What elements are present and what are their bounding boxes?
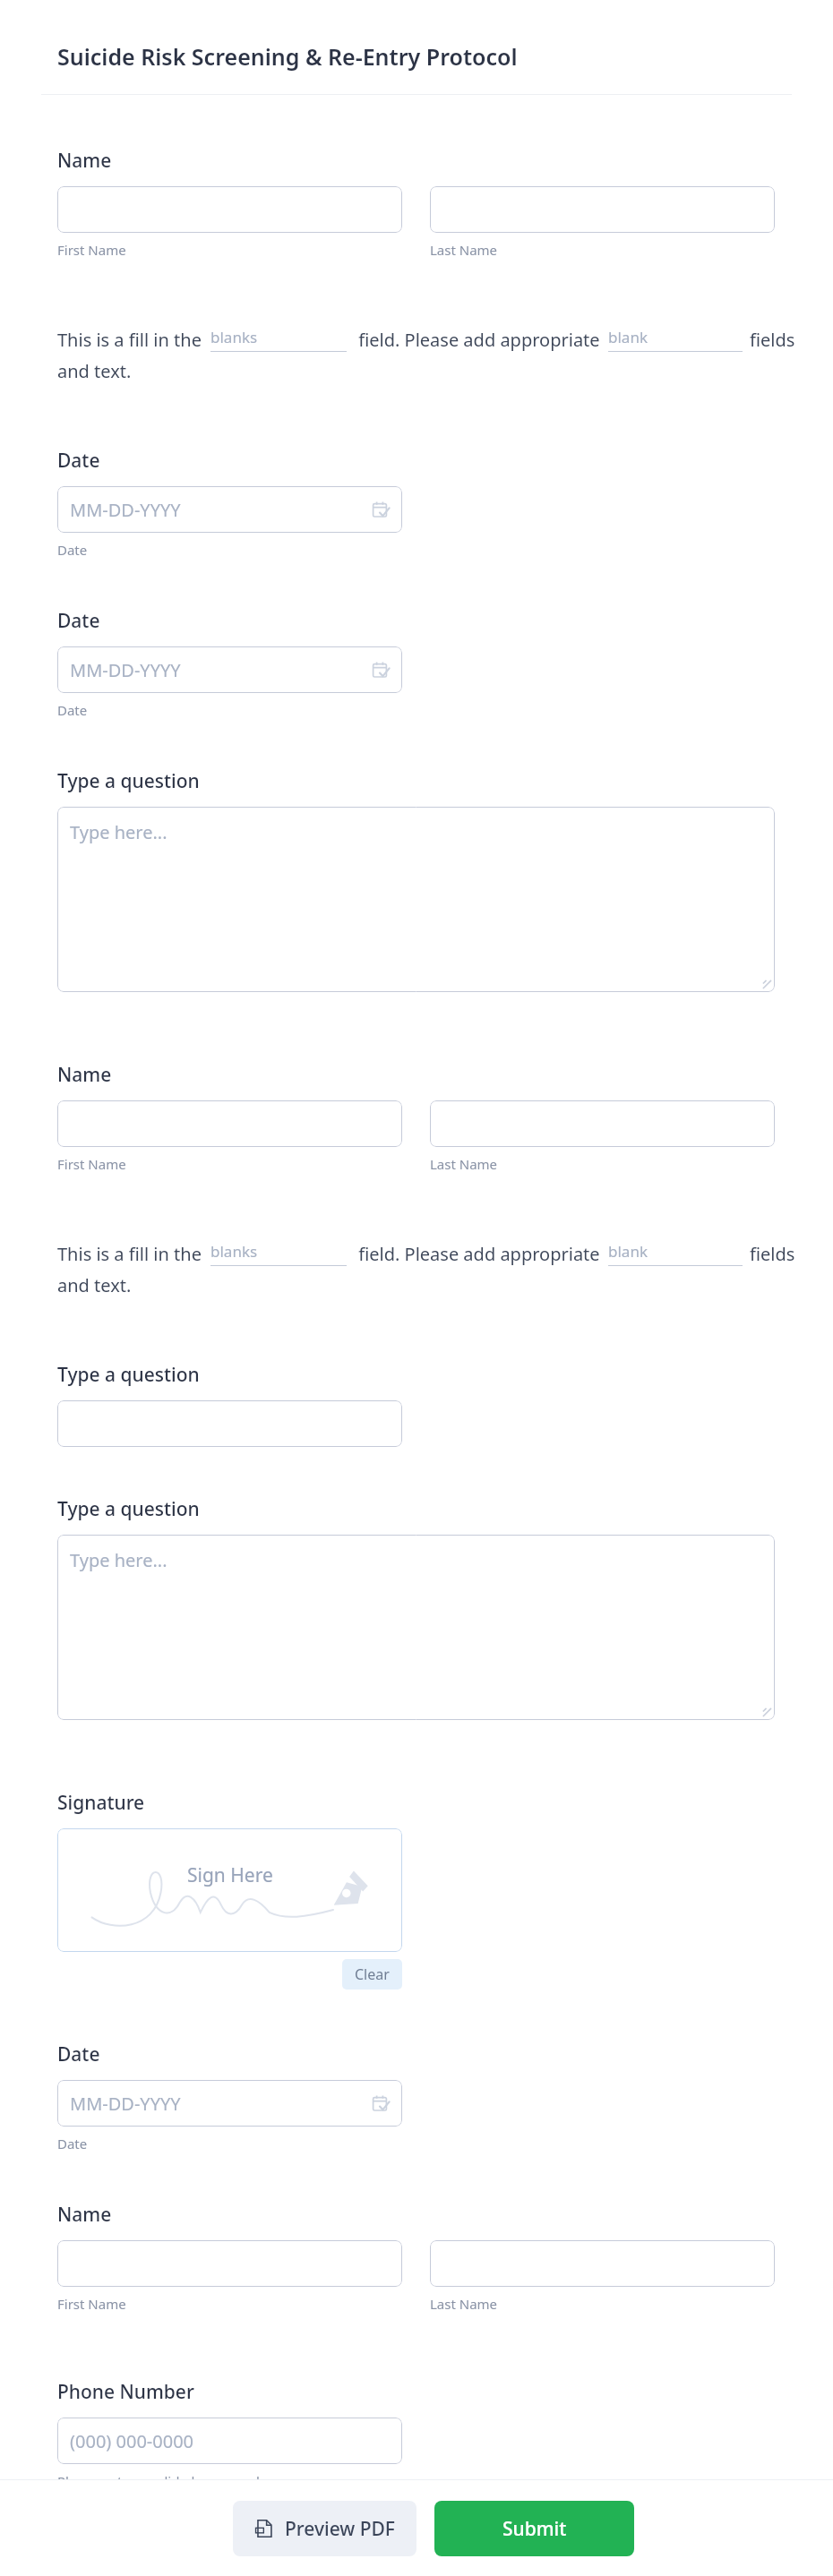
staticText: Date	[57, 701, 88, 719]
button[interactable]: Blank field	[210, 1241, 347, 1266]
button[interactable]: Type here	[57, 807, 775, 992]
staticText: Phone Number	[57, 2379, 194, 2405]
staticText: field. Please add appropriate	[354, 1242, 605, 1266]
staticText: MM-DD-YYYY	[70, 658, 181, 682]
staticText: Suicide Risk Screening & Re-Entry Protoc…	[57, 41, 518, 72]
button[interactable]: Sign Here	[57, 1828, 402, 1952]
button[interactable]: First Name	[57, 1100, 402, 1147]
staticText: Submit	[502, 2516, 567, 2542]
staticText: First Name	[57, 241, 126, 259]
staticText: Name	[57, 148, 112, 174]
button[interactable]: Blank field	[608, 327, 743, 352]
button[interactable]: Type here	[57, 1535, 775, 1720]
staticText: Signature	[57, 1790, 145, 1816]
staticText: Preview PDF	[285, 2516, 395, 2542]
staticText: Name	[57, 2202, 112, 2228]
staticText: Date	[57, 2135, 88, 2152]
staticText: Type here...	[70, 1548, 167, 1572]
staticText: Please enter a valid phone number.	[57, 2472, 279, 2479]
other: Pick date	[372, 501, 390, 518]
staticText: Type a question	[57, 1362, 200, 1388]
staticText: and text.	[57, 1273, 132, 1297]
staticText: Name	[57, 1062, 112, 1088]
button[interactable]: Preview PDF	[233, 2501, 416, 2556]
button[interactable]: Phone Number	[57, 2418, 402, 2464]
staticText: This is a fill in the	[57, 328, 207, 352]
staticText: MM-DD-YYYY	[70, 498, 181, 522]
staticText: Date	[57, 2041, 100, 2067]
other: Pick date	[372, 2094, 390, 2112]
other: Pick date	[372, 661, 390, 679]
button[interactable]: Blank field	[608, 1241, 743, 1266]
button[interactable]: Clear	[342, 1959, 402, 1990]
staticText: Type a question	[57, 1496, 200, 1522]
staticText: fields	[750, 1242, 795, 1266]
button[interactable]: Last Name	[430, 186, 775, 233]
staticText: Last Name	[430, 1155, 498, 1173]
staticText: MM-DD-YYYY	[70, 2092, 181, 2116]
button[interactable]: Date	[57, 646, 402, 693]
staticText: blank	[608, 327, 648, 347]
staticText: Sign Here	[187, 1862, 273, 1888]
button[interactable]: Date	[57, 2080, 402, 2127]
staticText: blanks	[210, 1241, 258, 1262]
staticText: Last Name	[430, 241, 498, 259]
staticText: blanks	[210, 327, 258, 347]
staticText: and text.	[57, 359, 132, 383]
staticText: Last Name	[430, 2295, 498, 2313]
staticText: Clear	[355, 1964, 390, 1984]
staticText: First Name	[57, 1155, 126, 1173]
button[interactable]: Last Name	[430, 2240, 775, 2287]
staticText: This is a fill in the	[57, 1242, 207, 1266]
button[interactable]: First Name	[57, 186, 402, 233]
staticText: First Name	[57, 2295, 126, 2313]
staticText: Date	[57, 608, 100, 634]
staticText: Type here...	[70, 820, 167, 844]
staticText: (000) 000-0000	[70, 2429, 194, 2453]
staticText: fields	[750, 328, 795, 352]
staticText: field. Please add appropriate	[354, 328, 605, 352]
button[interactable]: First Name	[57, 2240, 402, 2287]
button[interactable]: Last Name	[430, 1100, 775, 1147]
staticText: blank	[608, 1241, 648, 1262]
staticText: Type a question	[57, 768, 200, 794]
button[interactable]: Date	[57, 486, 402, 533]
button[interactable]: Blank field	[210, 327, 347, 352]
staticText: Date	[57, 448, 100, 474]
staticText: Date	[57, 541, 88, 559]
button[interactable]: Answer	[57, 1400, 402, 1447]
button[interactable]: Submit	[434, 2501, 634, 2556]
